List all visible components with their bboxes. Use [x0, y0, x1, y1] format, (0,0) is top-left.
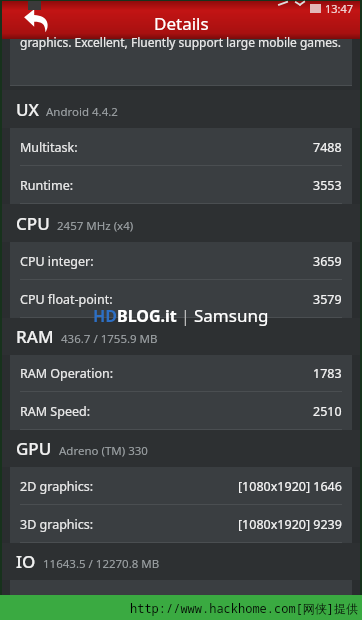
button[interactable]: 3D graphics:: [10, 505, 352, 543]
button[interactable]: Runtime:: [10, 166, 352, 204]
staticText: RAM Speed:: [20, 403, 91, 420]
button[interactable]: GPU: [2, 430, 360, 467]
button[interactable]: CPU: [2, 204, 360, 242]
staticText: 1783: [313, 365, 342, 382]
button[interactable]: graphics. Excellent, Fluently support la…: [10, 39, 352, 86]
button[interactable]: Multitask:: [10, 128, 352, 166]
button[interactable]: RAM: [2, 318, 360, 355]
staticText: 13:47: [325, 1, 354, 15]
staticText: UX: [16, 98, 39, 121]
staticText: BLOG.it: [117, 305, 177, 327]
button[interactable]: CPU float-point:: [10, 280, 352, 318]
staticText: 2457 MHz (x4): [57, 218, 134, 234]
staticText: RAM: [16, 325, 54, 348]
staticText: 1599: [313, 591, 342, 608]
staticText: GPU: [16, 437, 52, 460]
button[interactable]: RAM Speed:: [10, 392, 352, 430]
staticText: CPU: [16, 212, 50, 235]
button[interactable]: Storage I/O:: [10, 580, 352, 618]
staticText: 2510: [313, 403, 342, 420]
staticText: 3553: [313, 177, 342, 194]
staticText: |: [181, 305, 190, 327]
button[interactable]: CPU integer:: [10, 242, 352, 280]
staticText: Android 4.4.2: [46, 104, 118, 120]
button[interactable]: 2D graphics:: [10, 467, 352, 505]
staticText: Adreno (TM) 330: [59, 443, 148, 459]
staticText: Multitask:: [20, 139, 78, 156]
staticText: 7488: [313, 139, 342, 156]
staticText: Runtime:: [20, 177, 74, 194]
staticText: Storage I/O:: [20, 591, 91, 608]
button[interactable]: IO: [2, 543, 360, 580]
staticText: 436.7 / 1755.9 MB: [61, 331, 158, 347]
staticText: http://www.hackhome.com[网侠]提供: [0, 600, 358, 616]
staticText: RAM Operation:: [20, 365, 114, 382]
staticText: 3D graphics:: [20, 516, 94, 533]
staticText: CPU float-point:: [20, 291, 113, 308]
staticText: 11643.5 / 12270.8 MB: [43, 556, 160, 572]
staticText: Samsung: [194, 304, 269, 327]
button[interactable]: UX: [2, 90, 360, 128]
staticText: HD: [93, 305, 117, 327]
staticText: IO: [16, 550, 36, 573]
staticText: 2D graphics:: [20, 478, 94, 495]
staticText: [1080x1920] 1646: [238, 478, 342, 495]
staticText: [1080x1920] 9239: [238, 516, 342, 533]
staticText: 3659: [313, 253, 342, 270]
staticText: CPU integer:: [20, 253, 94, 270]
staticText: Details: [154, 12, 209, 35]
button[interactable]: Back: [20, 3, 54, 37]
staticText: graphics. Excellent, Fluently support la…: [20, 34, 342, 50]
button[interactable]: RAM Operation:: [10, 355, 352, 392]
staticText: 3579: [313, 291, 342, 308]
